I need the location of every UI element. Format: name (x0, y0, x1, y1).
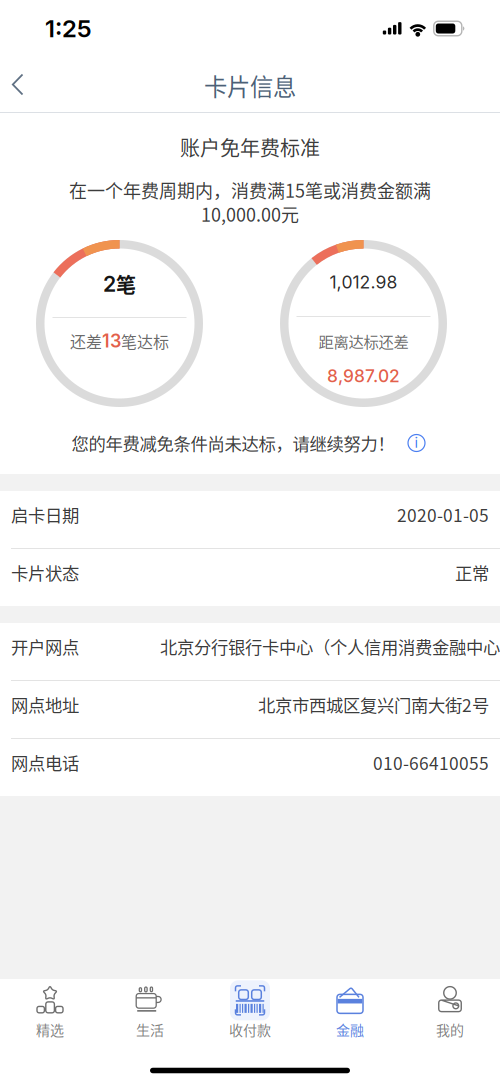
staticText: 启卡日期 (11, 502, 79, 527)
button[interactable]: 我的 (400, 979, 500, 1047)
staticText: 精选 (36, 1019, 64, 1040)
staticText: 10,000.00元 (201, 201, 299, 227)
staticText: 笔 (116, 269, 136, 298)
staticText: 13 (102, 330, 121, 352)
button[interactable]: 启卡日期 (0, 491, 500, 548)
staticText: 1:25 (45, 14, 92, 43)
button[interactable]: 开户网点 (0, 623, 500, 680)
staticText: 收付款 (229, 1019, 271, 1040)
button[interactable]: 卡片状态 (0, 549, 500, 606)
button[interactable]: 金融 (300, 979, 400, 1047)
staticText: 北京市西城区复兴门南大街2号 (258, 692, 489, 717)
staticText: 账户免年费标准 (180, 132, 320, 161)
button[interactable]: 网点电话 (0, 739, 500, 796)
staticText: 网点地址 (11, 692, 79, 717)
staticText: 您的年费减免条件尚未达标，请继续努力！ (71, 430, 394, 456)
staticText: 8,987.02 (327, 365, 400, 386)
staticText: 正常 (455, 560, 489, 585)
staticText: 北京分行银行卡中心（个人信用消费金融中心 (160, 634, 500, 659)
button[interactable]: Back (0, 59, 42, 110)
staticText: 生活 (136, 1019, 164, 1040)
button[interactable]: 网点地址 (0, 681, 500, 738)
button[interactable]: 生活 (100, 979, 200, 1047)
staticText: 卡片状态 (11, 560, 79, 585)
staticText: 金融 (336, 1019, 364, 1040)
staticText: 网点电话 (11, 750, 79, 775)
staticText: 还差 (70, 329, 102, 353)
staticText: 开户网点 (11, 634, 79, 659)
button[interactable]: Info (404, 431, 428, 455)
staticText: 距离达标还差 (318, 330, 408, 352)
staticText: 我的 (436, 1019, 464, 1040)
button[interactable]: 精选 (0, 979, 100, 1047)
staticText: 010-66410055 (373, 750, 489, 775)
staticText: i (414, 434, 418, 451)
staticText: 2020-01-05 (397, 502, 489, 527)
staticText: 2 (103, 271, 116, 297)
staticText: 卡片信息 (204, 69, 296, 102)
staticText: 1,012.98 (329, 271, 397, 293)
staticText: 在一个年费周期内，消费满15笔或消费金额满 (69, 177, 431, 203)
button[interactable]: 收付款 (200, 979, 300, 1047)
staticText: 笔达标 (121, 329, 169, 353)
